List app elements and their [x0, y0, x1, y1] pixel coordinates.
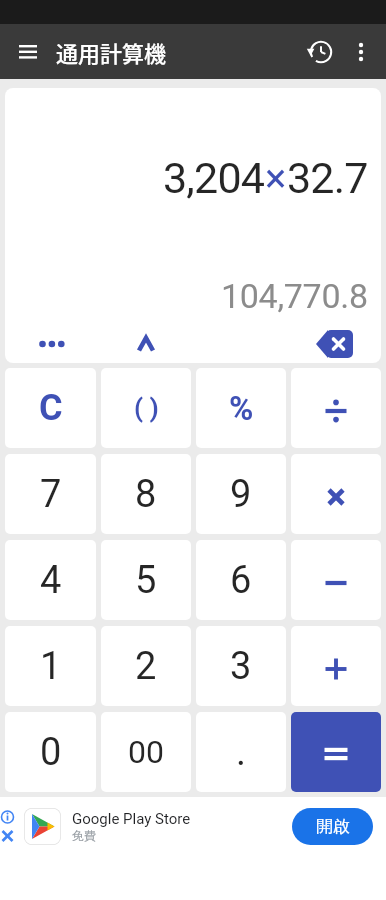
button[interactable]: 8 [101, 454, 191, 534]
button[interactable]: 1 [5, 626, 96, 706]
button[interactable]: 4 [5, 540, 96, 620]
button[interactable] [99, 324, 193, 363]
staticText: 5 [135, 558, 157, 603]
button[interactable]: % [196, 368, 286, 448]
staticText: . [236, 730, 247, 775]
button[interactable] [13, 37, 43, 67]
staticText: Google Play Store [72, 810, 191, 828]
button[interactable] [291, 454, 381, 534]
staticText: 3 [230, 644, 252, 689]
button[interactable] [287, 324, 381, 363]
staticText: 7 [40, 472, 62, 517]
staticText: 6 [230, 558, 252, 603]
staticText: 開啟 [316, 816, 350, 837]
button[interactable] [346, 37, 376, 67]
staticText: 1 [40, 644, 62, 689]
staticText: 3,204 [163, 153, 265, 203]
button[interactable]: 2 [101, 626, 191, 706]
button[interactable] [291, 368, 381, 448]
button[interactable]: 7 [5, 454, 96, 534]
button[interactable]: ( ) [101, 368, 191, 448]
staticText: 00 [128, 733, 164, 771]
button[interactable]: 5 [101, 540, 191, 620]
button[interactable] [291, 712, 381, 792]
button[interactable] [305, 37, 335, 67]
staticText: × [265, 155, 287, 202]
button[interactable]: 3 [196, 626, 286, 706]
staticText: 8 [135, 472, 157, 517]
staticText: 通用計算機 [56, 36, 167, 68]
button[interactable]: 開啟 [292, 808, 373, 845]
staticText: 9 [230, 472, 252, 517]
button[interactable]: C [5, 368, 96, 448]
button[interactable]: 9 [196, 454, 286, 534]
button[interactable] [291, 540, 381, 620]
staticText: C [39, 387, 63, 429]
button[interactable] [291, 626, 381, 706]
staticText: 32.7 [287, 153, 368, 203]
button[interactable] [5, 324, 99, 363]
staticText: 0 [40, 730, 62, 775]
button[interactable]: . [196, 712, 286, 792]
staticText: ( ) [134, 393, 159, 423]
staticText: 4 [40, 558, 62, 603]
staticText: % [229, 389, 254, 428]
button[interactable]: 0 [5, 712, 96, 792]
staticText: 免費 [72, 828, 96, 843]
staticText: 2 [135, 644, 157, 689]
button[interactable]: 00 [101, 712, 191, 792]
staticText: 104,770.8 [221, 276, 368, 316]
button[interactable]: 6 [196, 540, 286, 620]
